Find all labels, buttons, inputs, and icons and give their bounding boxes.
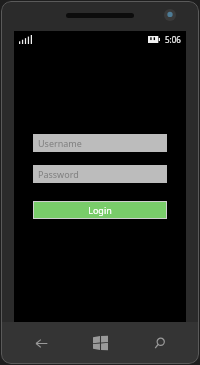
button[interactable]: Login — [33, 201, 167, 219]
staticText: Password — [38, 168, 79, 180]
button[interactable]: Username — [33, 134, 167, 152]
button[interactable]: Back — [21, 323, 61, 363]
button[interactable]: Start — [80, 323, 120, 363]
staticText: 5:06 — [165, 34, 181, 45]
staticText: Login — [88, 204, 112, 216]
button[interactable]: Search — [140, 323, 180, 363]
button[interactable]: Password — [33, 165, 167, 183]
staticText: Username — [38, 137, 82, 149]
